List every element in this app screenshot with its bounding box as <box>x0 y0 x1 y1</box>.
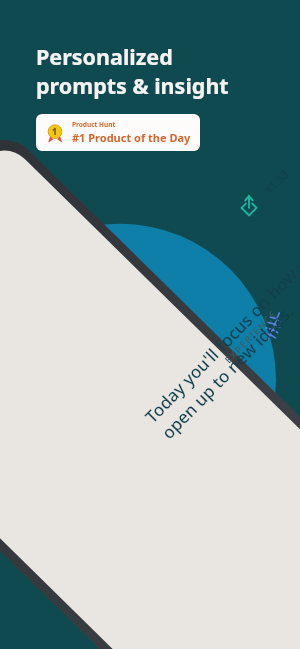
staticText: #1 Product of the Day <box>72 130 191 145</box>
staticText: Personalized prompts & insight <box>36 42 229 100</box>
button[interactable]: Product Hunt <box>36 114 200 151</box>
staticText: EXPERIENCE <box>222 307 280 366</box>
staticText: Today you'll focus on how you open up to… <box>140 238 300 444</box>
staticText: Product Hunt <box>72 120 116 129</box>
button[interactable]: Share <box>238 195 260 217</box>
